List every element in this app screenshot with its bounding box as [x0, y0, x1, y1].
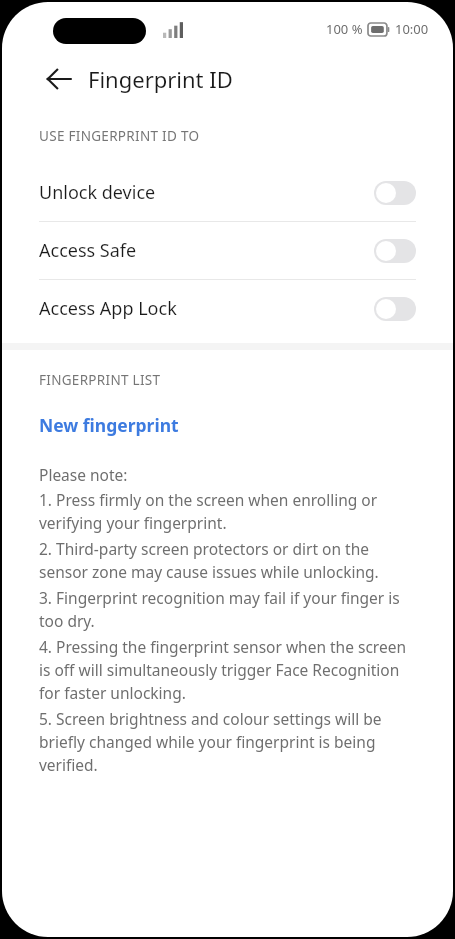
staticText: Unlock device — [39, 180, 374, 205]
staticText: 3. Fingerprint recognition may fail if y… — [39, 587, 420, 632]
button[interactable]: Access App Lock — [2, 280, 453, 337]
staticText: USE FINGERPRINT ID TO — [39, 127, 200, 145]
staticText: Fingerprint ID — [88, 64, 233, 94]
staticText: Access Safe — [39, 238, 374, 263]
staticText: Please note: — [39, 464, 128, 485]
staticText: FINGERPRINT LIST — [39, 371, 161, 389]
button[interactable]: Access Safe — [2, 222, 453, 279]
staticText: 4. Pressing the fingerprint sensor when … — [39, 636, 420, 704]
staticText: 100 % — [326, 20, 363, 38]
button[interactable]: New fingerprint — [2, 405, 453, 445]
staticText: 1. Press firmly on the screen when enrol… — [39, 489, 420, 534]
staticText: 2. Third-party screen protectors or dirt… — [39, 538, 420, 583]
button[interactable]: Back — [35, 55, 83, 103]
staticText: 5. Screen brightness and colour settings… — [39, 708, 420, 776]
staticText: New fingerprint — [39, 413, 179, 437]
staticText: Access App Lock — [39, 296, 374, 321]
button[interactable]: Unlock device — [2, 164, 453, 221]
staticText: 10:00 — [395, 20, 429, 38]
